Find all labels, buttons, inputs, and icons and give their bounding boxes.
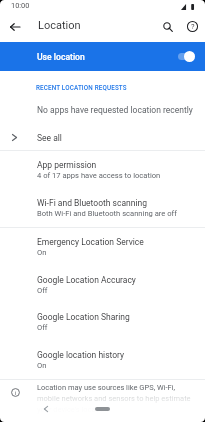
staticText: Wi-Fi and Bluetooth scanning: [37, 198, 147, 208]
staticText: Location: [38, 19, 81, 32]
staticText: Emergency Location Service: [37, 237, 144, 247]
button[interactable]: App permission: [0, 160, 205, 198]
button[interactable]: Google Location Accuracy: [0, 275, 205, 312]
staticText: your device's location.: [37, 405, 111, 414]
button[interactable]: See all: [0, 126, 205, 150]
staticText: Google Location Sharing: [37, 312, 130, 322]
staticText: App permission: [37, 160, 97, 170]
staticText: No apps have requested location recently: [37, 105, 193, 115]
staticText: mobile networks and sensors to help esti…: [37, 394, 191, 403]
staticText: RECENT LOCATION REQUESTS: [36, 84, 127, 91]
staticText: Location may use sources like GPS, Wi-Fi…: [37, 383, 175, 392]
button[interactable]: Google Location Sharing: [0, 312, 205, 349]
button[interactable]: Use location: [0, 42, 205, 71]
staticText: i: [15, 389, 17, 396]
button[interactable]: Back: [39, 402, 53, 416]
button[interactable]: Back: [4, 16, 25, 37]
staticText: ?: [191, 22, 195, 31]
staticText: Google location history: [37, 350, 125, 360]
staticText: Use location: [37, 52, 85, 62]
button[interactable]: Emergency Location Service: [0, 237, 205, 274]
button[interactable]: Google location history: [0, 350, 205, 387]
staticText: 10:00: [11, 1, 30, 10]
staticText: Both Wi-Fi and Bluetooth scanning are of…: [37, 209, 177, 218]
staticText: On: [37, 361, 47, 370]
staticText: 4 of 17 apps have access to location: [37, 171, 161, 180]
staticText: See all: [37, 133, 62, 143]
staticText: On: [37, 248, 47, 257]
button[interactable]: Wi-Fi and Bluetooth scanning: [0, 198, 205, 236]
button[interactable]: Search: [157, 16, 178, 37]
staticText: Off: [37, 323, 48, 332]
staticText: Off: [37, 286, 48, 295]
button[interactable]: Help: [182, 16, 203, 37]
staticText: Google Location Accuracy: [37, 275, 136, 285]
